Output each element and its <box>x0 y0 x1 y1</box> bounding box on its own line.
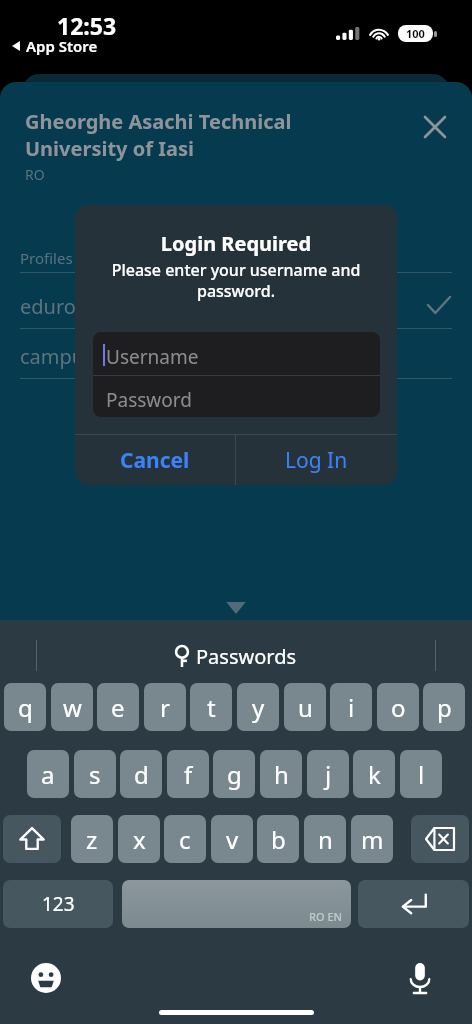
button[interactable]: k <box>353 750 395 798</box>
button[interactable]: j <box>307 750 349 798</box>
staticText: y <box>252 691 265 724</box>
button[interactable]: campus <box>0 332 472 378</box>
staticText: s <box>89 758 101 791</box>
staticText: g <box>227 758 242 791</box>
staticText: Gheorghe Asachi Technical University of … <box>25 108 395 162</box>
button[interactable]: o <box>377 683 419 731</box>
staticText: Log In <box>285 446 348 475</box>
staticText: r <box>160 691 170 724</box>
button[interactable]: Shift <box>3 815 61 863</box>
button[interactable]: Passwords <box>0 638 472 674</box>
staticText: m <box>361 823 384 856</box>
button[interactable]: d <box>120 750 162 798</box>
button[interactable]: w <box>51 683 93 731</box>
staticText: b <box>271 823 286 856</box>
button[interactable]: Close <box>418 110 452 144</box>
staticText: Passwords <box>196 643 297 670</box>
staticText: w <box>63 691 82 724</box>
button[interactable]: b <box>257 815 299 863</box>
button[interactable]: m <box>351 815 393 863</box>
staticText: h <box>274 758 289 791</box>
staticText: i <box>348 691 355 724</box>
staticText: x <box>133 823 146 856</box>
button[interactable]: Log In <box>236 435 397 485</box>
button[interactable]: Cancel <box>75 435 235 485</box>
button[interactable]: u <box>284 683 326 731</box>
staticText: 123 <box>42 891 75 917</box>
button[interactable]: q <box>4 683 46 731</box>
staticText: l <box>418 758 425 791</box>
staticText: 100 <box>406 26 425 41</box>
staticText: Login Required <box>75 230 397 257</box>
button[interactable]: Space <box>122 880 351 928</box>
button[interactable]: eduroam <box>0 282 472 328</box>
staticText: k <box>368 758 381 791</box>
button[interactable]: e <box>97 683 139 731</box>
button[interactable]: y <box>237 683 279 731</box>
staticText: z <box>86 823 98 856</box>
staticText: Cancel <box>120 446 190 475</box>
button[interactable]: c <box>164 815 206 863</box>
staticText: Please enter your username and password. <box>103 259 369 302</box>
button[interactable]: t <box>190 683 232 731</box>
staticText: n <box>318 823 333 856</box>
button[interactable]: l <box>400 750 442 798</box>
staticText: Username <box>106 344 199 370</box>
staticText: campus <box>20 343 94 370</box>
button[interactable]: Backspace <box>411 815 469 863</box>
staticText: a <box>41 758 55 791</box>
staticText: u <box>298 691 313 724</box>
staticText: eduroam <box>20 293 106 320</box>
staticText: App Store <box>26 36 98 56</box>
staticText: RO EN <box>309 909 343 924</box>
button[interactable]: x <box>118 815 160 863</box>
button[interactable]: r <box>144 683 186 731</box>
staticText: c <box>179 823 191 856</box>
button[interactable]: Emoji <box>22 954 70 1002</box>
staticText: q <box>18 691 33 724</box>
button[interactable]: z <box>71 815 113 863</box>
staticText: t <box>207 691 216 724</box>
staticText: o <box>391 691 406 724</box>
button[interactable]: 123 <box>3 880 113 928</box>
staticText: 12:53 <box>57 10 117 41</box>
button[interactable]: p <box>423 683 465 731</box>
staticText: v <box>226 823 239 856</box>
button[interactable]: f <box>167 750 209 798</box>
button[interactable]: g <box>213 750 255 798</box>
staticText: Password <box>106 387 192 413</box>
staticText: j <box>325 758 332 791</box>
button[interactable]: h <box>260 750 302 798</box>
staticText: f <box>184 758 193 791</box>
button[interactable]: i <box>330 683 372 731</box>
staticText: e <box>111 691 125 724</box>
button[interactable]: v <box>211 815 253 863</box>
button[interactable]: Dictation <box>396 954 444 1002</box>
staticText: p <box>437 691 452 724</box>
staticText: Profiles <box>20 248 73 268</box>
button[interactable]: App Store <box>12 36 98 56</box>
button[interactable]: Return <box>358 880 469 928</box>
button[interactable]: s <box>74 750 116 798</box>
staticText: d <box>134 758 149 791</box>
button[interactable]: n <box>304 815 346 863</box>
button[interactable]: a <box>27 750 69 798</box>
staticText: RO <box>25 165 45 184</box>
